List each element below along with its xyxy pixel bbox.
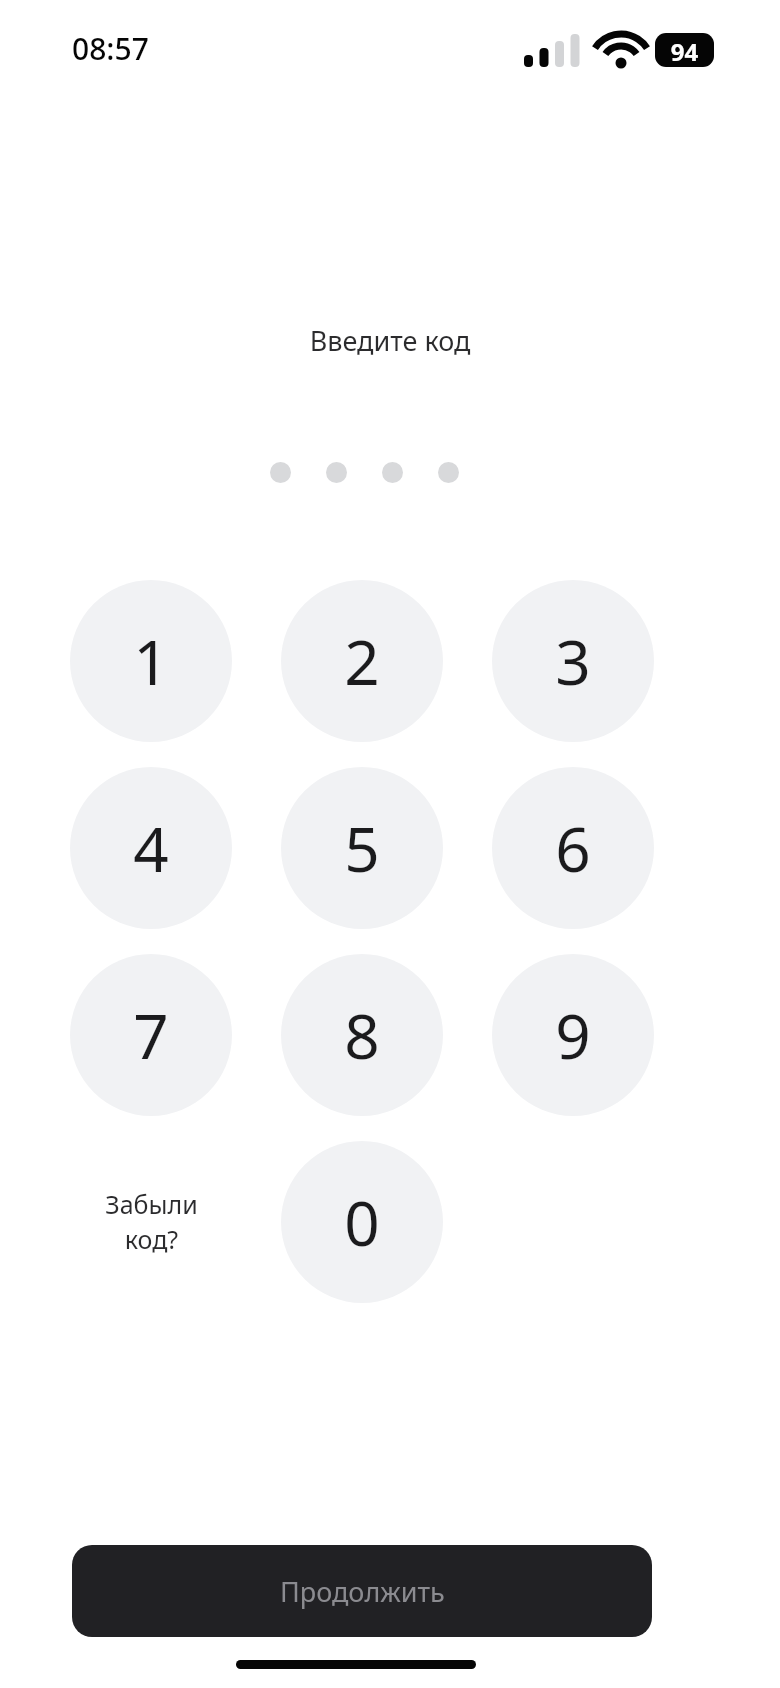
button[interactable]: 9	[492, 954, 654, 1116]
staticText: 0	[344, 1180, 380, 1264]
staticText: 2	[344, 619, 380, 703]
staticText: 08:57	[72, 28, 149, 69]
staticText: Продолжить	[280, 1573, 445, 1610]
staticText: Введите код	[0, 322, 780, 359]
button[interactable]: 2	[281, 580, 443, 742]
staticText: 7	[133, 993, 169, 1077]
button[interactable]: 1	[70, 580, 232, 742]
button[interactable]: 0	[281, 1141, 443, 1303]
staticText: Забыли код?	[105, 1187, 198, 1257]
staticText: 5	[344, 806, 380, 890]
staticText: 9	[555, 993, 591, 1077]
staticText: 8	[344, 993, 380, 1077]
button[interactable]: 3	[492, 580, 654, 742]
button[interactable]: Продолжить	[72, 1545, 652, 1637]
staticText: 3	[555, 619, 591, 703]
button[interactable]: 7	[70, 954, 232, 1116]
staticText: 94	[655, 35, 714, 68]
button[interactable]: 4	[70, 767, 232, 929]
button[interactable]: 5	[281, 767, 443, 929]
staticText: 6	[555, 806, 591, 890]
staticText: 4	[133, 806, 169, 890]
button[interactable]: 6	[492, 767, 654, 929]
button[interactable]: 8	[281, 954, 443, 1116]
staticText: 1	[133, 619, 169, 703]
button[interactable]: Забыли код?	[60, 1141, 242, 1303]
other: Signal, Wi-Fi and battery status	[524, 33, 694, 69]
